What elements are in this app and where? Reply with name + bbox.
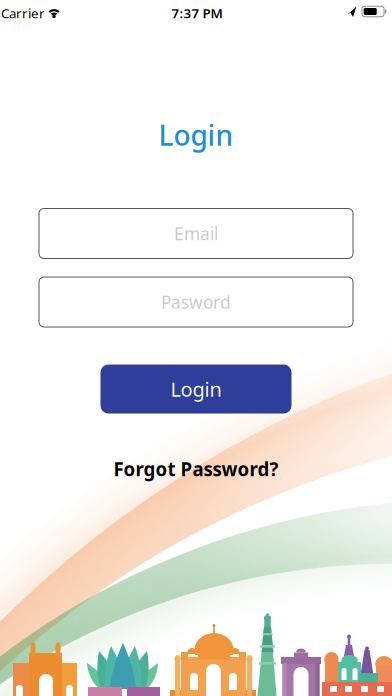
button[interactable]: Pasword [39, 277, 353, 327]
staticText: Forgot Password? [113, 457, 278, 481]
button[interactable]: Forgot Password? [113, 457, 278, 481]
staticText: Login [170, 376, 221, 402]
staticText: Carrier [1, 4, 45, 22]
staticText: 7:37 PM [171, 4, 222, 22]
staticText: Login [158, 116, 233, 154]
staticText: Email [174, 222, 218, 245]
button[interactable]: Email [39, 208, 353, 258]
button[interactable]: Login [100, 364, 291, 413]
staticText: Pasword [161, 290, 231, 313]
